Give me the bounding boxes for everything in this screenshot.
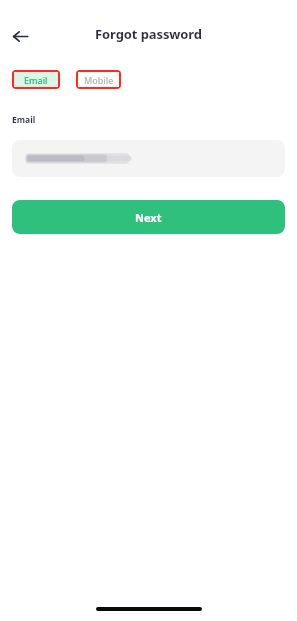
staticText: Email xyxy=(24,74,48,86)
staticText: Mobile xyxy=(84,74,114,86)
button[interactable]: Email xyxy=(12,70,60,89)
button[interactable]: Email input xyxy=(12,140,285,177)
staticText: Email xyxy=(12,114,36,126)
button[interactable]: Back xyxy=(6,22,34,50)
staticText: Forgot password xyxy=(0,25,297,43)
staticText: Next xyxy=(135,210,162,225)
button[interactable]: Mobile xyxy=(76,70,121,89)
button[interactable]: Next xyxy=(12,200,285,234)
